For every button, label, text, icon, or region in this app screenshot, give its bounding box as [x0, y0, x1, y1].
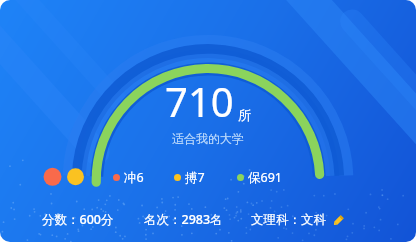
button[interactable]: 文理科：文科	[251, 212, 346, 228]
staticText: 710	[165, 74, 234, 128]
staticText: 分数：600分	[42, 211, 114, 228]
button[interactable]: 搏7	[174, 169, 205, 186]
staticText: 所	[238, 107, 251, 123]
staticText: 文理科：文科	[251, 212, 326, 228]
staticText: 保691	[248, 169, 282, 186]
staticText: 搏7	[185, 169, 205, 186]
button[interactable]: 编辑	[331, 213, 346, 228]
staticText: 名次：2983名	[144, 211, 223, 228]
staticText: 适合我的大学	[172, 131, 244, 146]
button[interactable]: 冲6	[113, 169, 144, 186]
staticText: 冲6	[124, 169, 144, 186]
button[interactable]: 保691	[237, 169, 282, 186]
